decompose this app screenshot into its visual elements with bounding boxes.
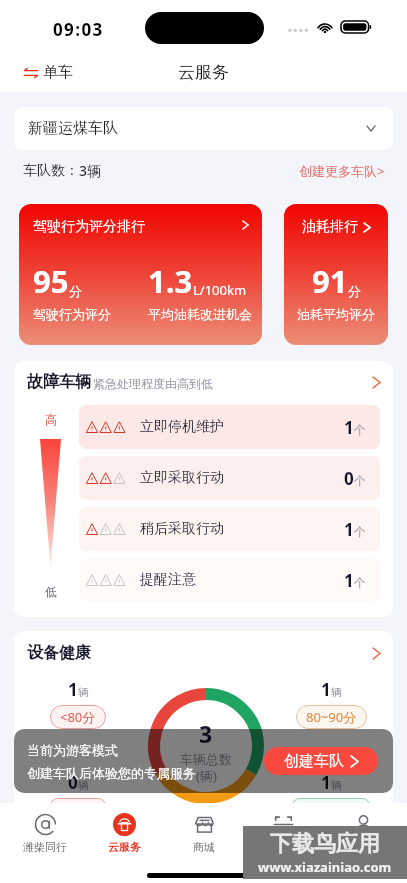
button[interactable]: 驾驶行为评分排行 <box>19 204 262 345</box>
staticText: 辆 <box>331 685 342 699</box>
staticText: 个 <box>354 422 366 437</box>
staticText: 单车 <box>43 63 73 82</box>
staticText: 09:03 <box>53 18 104 41</box>
button[interactable]: 稍后采取行动 <box>79 507 380 551</box>
staticText: 分 <box>69 283 82 299</box>
staticText: 平均油耗改进机会 <box>148 306 252 322</box>
button[interactable]: 潍柴同行 <box>10 809 80 858</box>
button[interactable]: 我的 <box>328 809 398 858</box>
staticText: 91 <box>312 260 348 302</box>
staticText: 个 <box>354 473 366 488</box>
staticText: www.xiazainiao.com <box>258 858 392 876</box>
staticText: 油耗排行 <box>302 218 358 236</box>
staticText: 稍后采取行动 <box>140 520 224 538</box>
staticText: 1 <box>68 678 78 701</box>
button[interactable]: 新疆运煤车队 <box>14 107 393 150</box>
staticText: 1 <box>344 569 354 592</box>
staticText: 辆 <box>78 685 89 699</box>
staticText: (辆) <box>196 767 217 785</box>
button[interactable]: 扫一扫 <box>248 809 318 858</box>
staticText: 0 <box>344 467 354 490</box>
staticText: 云服务 <box>108 840 141 854</box>
staticText: 扫一扫 <box>267 840 300 854</box>
staticText: 低 <box>45 584 57 599</box>
staticText: 提醒注意 <box>140 571 196 589</box>
staticText: 立即停机维护 <box>140 418 224 436</box>
staticText: 下载鸟应用 <box>270 830 380 858</box>
staticText: 油耗平均评分 <box>297 306 375 322</box>
staticText: 80~90分 <box>306 708 357 726</box>
staticText: 驾驶行为评分 <box>33 306 111 322</box>
staticText: 设备健康 <box>27 643 91 663</box>
staticText: 个 <box>354 575 366 590</box>
staticText: 1 <box>321 678 331 701</box>
staticText: L/100km <box>193 281 247 299</box>
staticText: 新疆运煤车队 <box>28 119 118 138</box>
staticText: 1 <box>344 518 354 541</box>
staticText: 云服务 <box>178 62 229 83</box>
staticText: 紧急处理程度由高到低 <box>93 376 213 391</box>
staticText: 3 <box>199 718 213 749</box>
button[interactable]: 创建更多车队> <box>299 162 385 180</box>
staticText: <80分 <box>60 708 96 726</box>
staticText: 3辆 <box>79 161 102 180</box>
staticText: 分 <box>348 283 361 299</box>
staticText: 驾驶行为评分排行 <box>33 218 145 236</box>
staticText: 当前为游客模式 <box>27 742 118 758</box>
button[interactable]: 油耗排行 <box>284 204 388 345</box>
button[interactable]: 单车 <box>19 59 77 86</box>
button[interactable]: 商城 <box>169 809 239 858</box>
staticText: 创建车队 <box>284 752 344 771</box>
staticText: 创建车队后体验您的专属服务 <box>27 765 196 781</box>
button[interactable]: 立即停机维护 <box>79 405 380 449</box>
staticText: 车队数： <box>23 162 79 180</box>
staticText: 1.3 <box>148 260 193 302</box>
staticText: 1 <box>321 771 331 794</box>
staticText: 我的 <box>352 840 374 854</box>
button[interactable]: 故障车辆 <box>27 361 380 403</box>
staticText: 商城 <box>193 840 215 854</box>
staticText: 个 <box>354 524 366 539</box>
staticText: 95 <box>33 260 69 302</box>
button[interactable]: 创建车队 <box>264 747 378 775</box>
staticText: 创建更多车队> <box>299 162 385 180</box>
staticText: 辆 <box>331 778 342 792</box>
staticText: 1 <box>344 416 354 439</box>
staticText: 辆 <box>78 778 89 792</box>
staticText: 车辆总数 <box>180 751 232 767</box>
staticText: 90~100分 <box>302 801 360 810</box>
staticText: 立即采取行动 <box>140 469 224 487</box>
staticText: 故障车辆 <box>27 372 91 392</box>
staticText: 高 <box>45 412 57 427</box>
staticText: 潍柴同行 <box>23 840 67 854</box>
button[interactable]: 云服务 <box>89 809 159 858</box>
button[interactable]: 提醒注意 <box>79 558 380 602</box>
staticText: <60分 <box>60 801 96 810</box>
button[interactable]: 立即采取行动 <box>79 456 380 500</box>
button[interactable]: 设备健康 <box>27 631 380 675</box>
staticText: 0 <box>68 771 78 794</box>
